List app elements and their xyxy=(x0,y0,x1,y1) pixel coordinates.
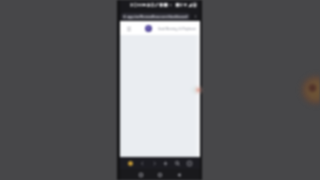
button[interactable]: Tabs xyxy=(185,159,194,168)
button[interactable]: Home xyxy=(155,170,164,179)
button[interactable]: Back xyxy=(174,170,183,179)
button[interactable]: Open navigation menu xyxy=(124,24,133,33)
button[interactable]: Back xyxy=(138,159,147,168)
staticText: Good Morning, it's Playhouse xyxy=(158,27,196,31)
staticText: app.trafficnowflow.com/dashboard xyxy=(127,14,188,19)
button[interactable]: Search xyxy=(173,159,182,168)
button[interactable]: Recent apps xyxy=(136,170,145,179)
button[interactable]: New tab xyxy=(161,159,170,168)
button[interactable]: Home xyxy=(126,159,135,168)
button[interactable]: More options xyxy=(190,11,200,21)
button[interactable]: Good Morning, it's Playhouse xyxy=(145,25,196,32)
button[interactable]: app.trafficnowflow.com/dashboard xyxy=(121,13,190,20)
button[interactable]: Forward xyxy=(150,159,159,168)
